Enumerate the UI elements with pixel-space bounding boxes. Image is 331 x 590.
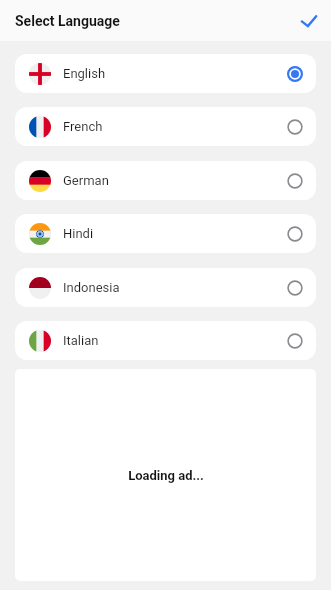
staticText: French [63,119,103,134]
button[interactable]: English [15,54,316,93]
staticText: Loading ad... [128,468,204,483]
staticText: Hindi [63,226,94,241]
button[interactable]: French [15,107,316,146]
button[interactable]: Indonesia [15,268,316,307]
staticText: Italian [63,333,99,348]
staticText: English [63,66,106,81]
button[interactable]: German [15,161,316,200]
staticText: German [63,173,109,188]
staticText: Select Language [15,13,120,29]
button[interactable]: Hindi [15,214,316,253]
staticText: Indonesia [63,280,120,295]
button[interactable]: Italian [15,321,316,360]
button[interactable]: Confirm selection [288,0,329,41]
